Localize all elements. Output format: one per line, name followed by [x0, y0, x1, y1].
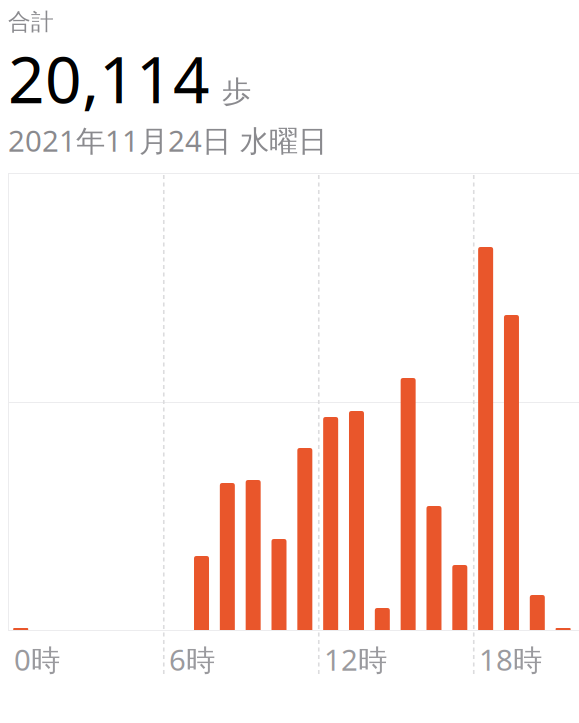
button[interactable]: 合計 [8, 8, 327, 160]
staticText: 20,114 [8, 36, 210, 121]
staticText: 0時 [14, 640, 60, 679]
staticText: 合計 [8, 8, 54, 36]
staticText: 12時 [324, 640, 387, 679]
staticText: 2021年11月24日 水曜日 [8, 121, 327, 160]
staticText: 歩 [222, 74, 251, 110]
staticText: 6時 [169, 640, 215, 679]
staticText: 18時 [479, 640, 542, 679]
